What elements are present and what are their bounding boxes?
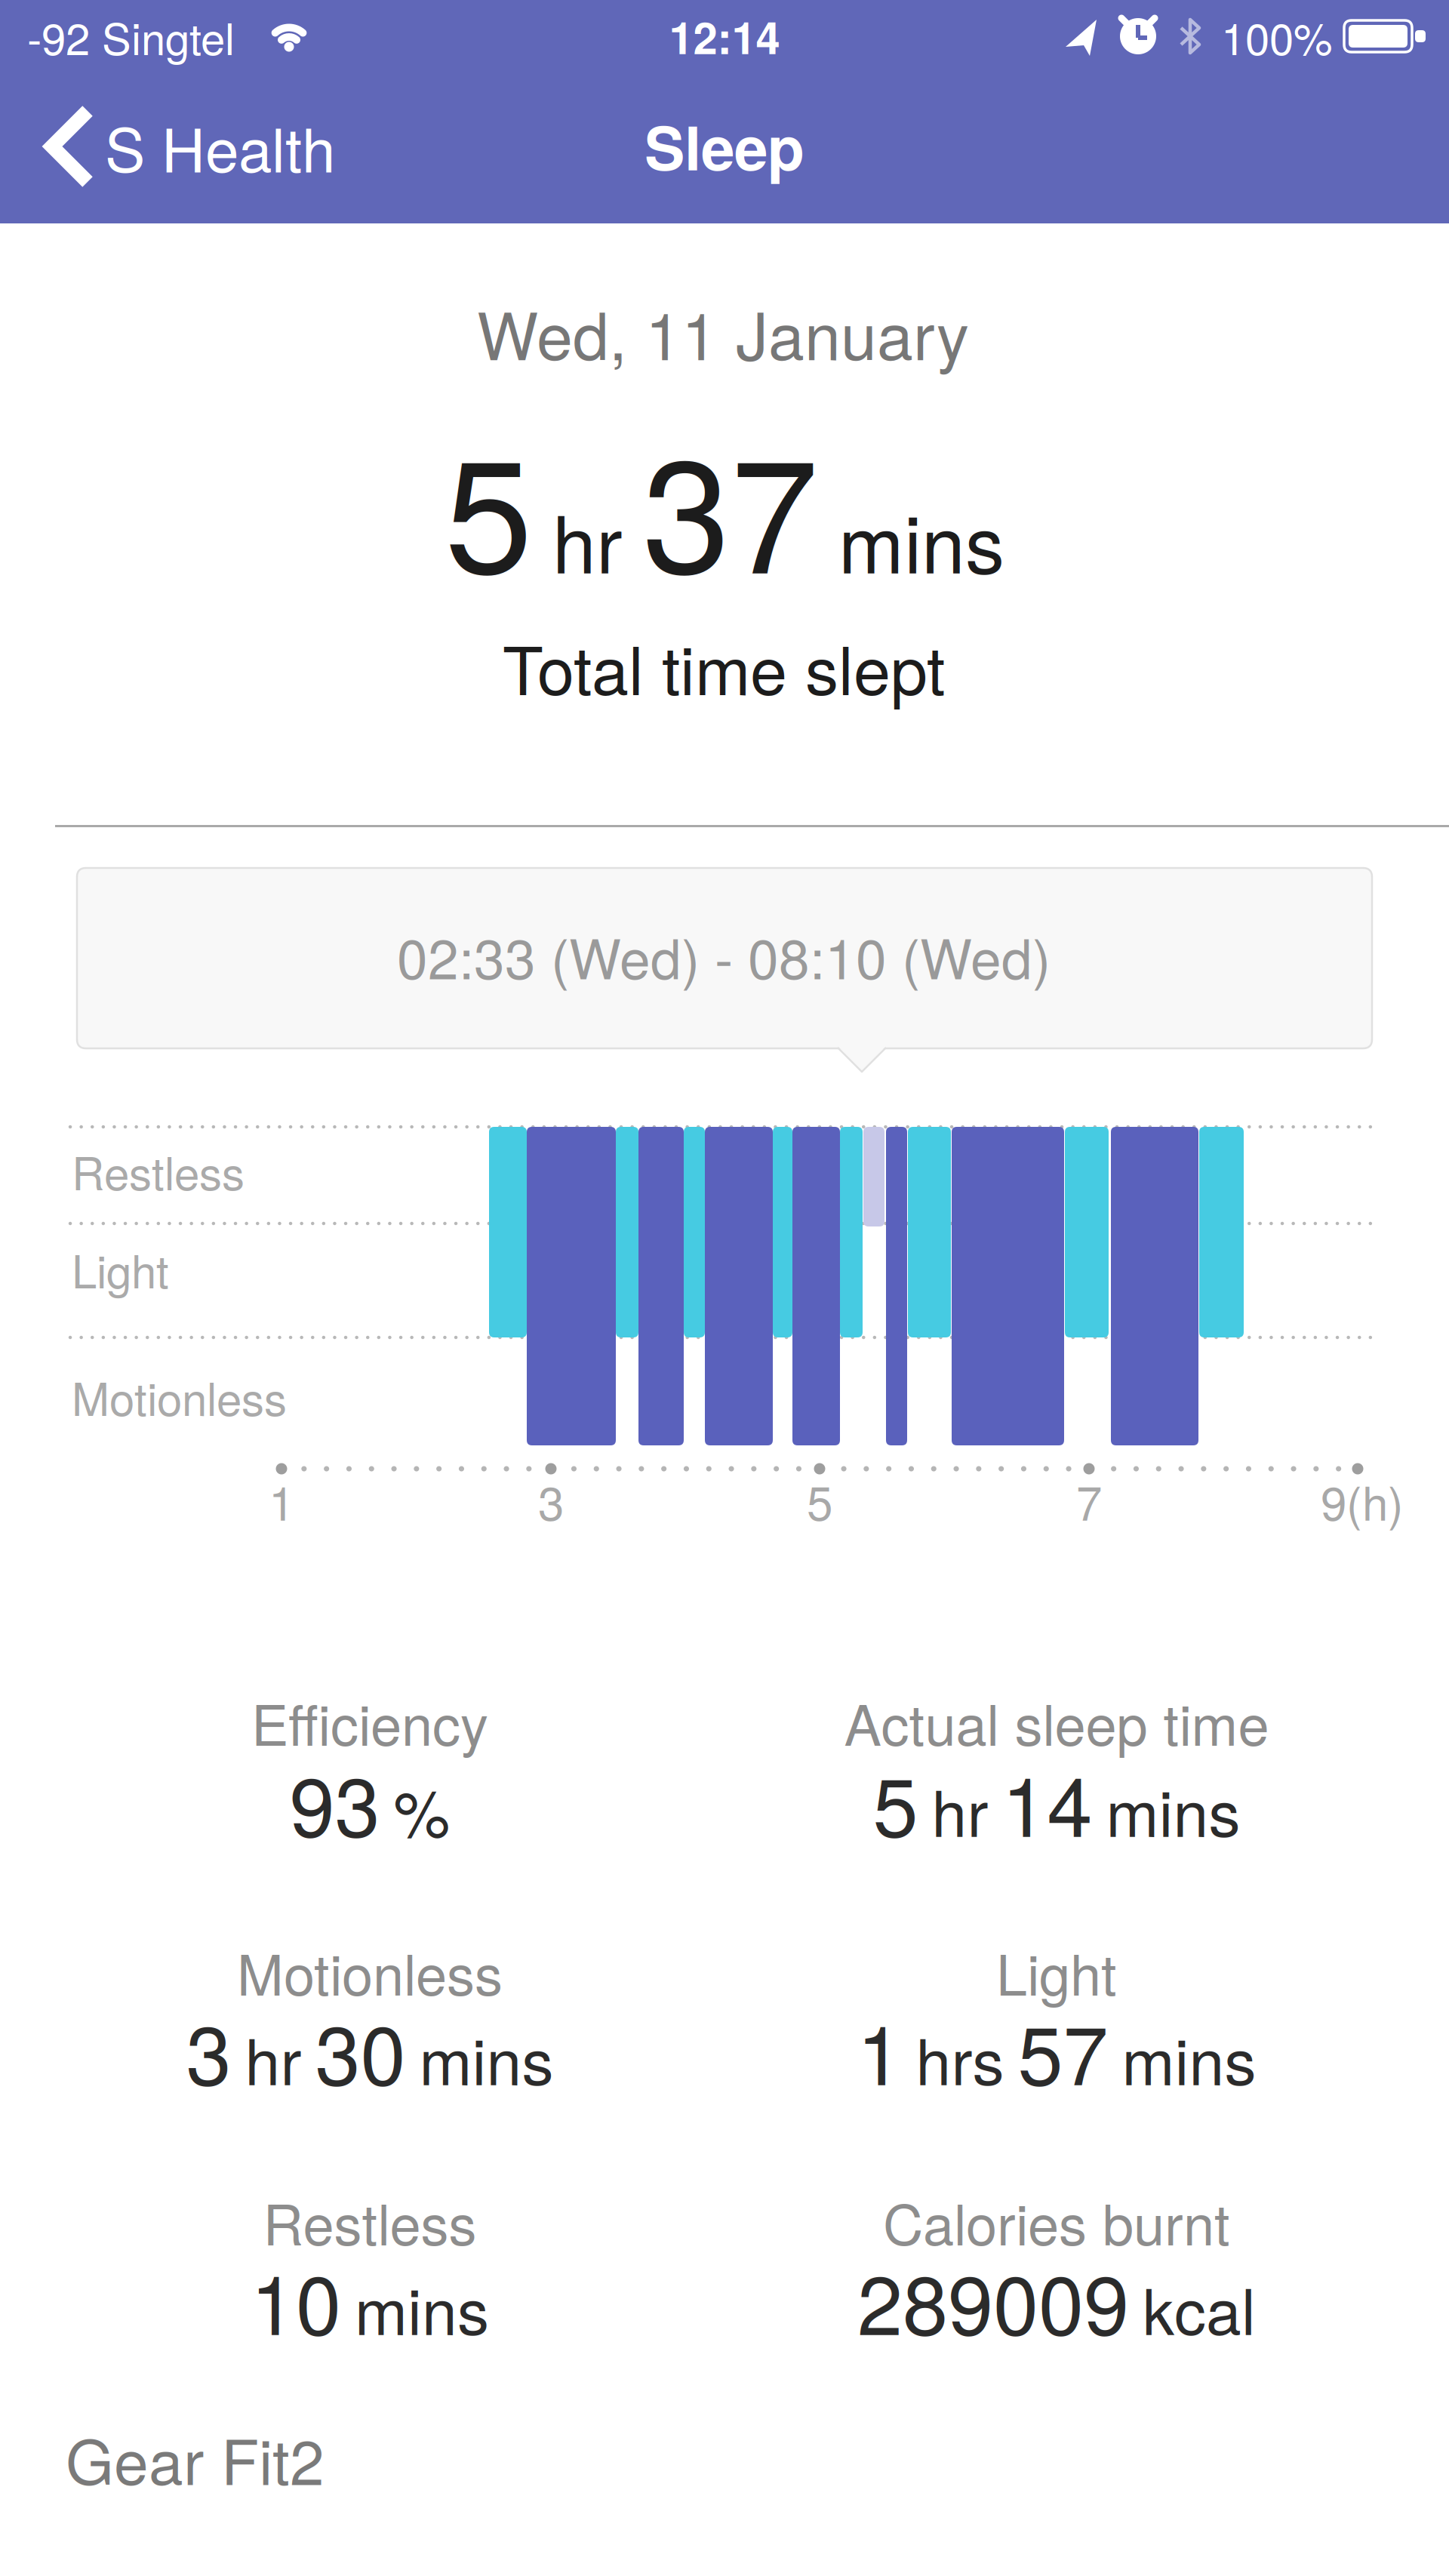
staticText: 9(h) bbox=[1321, 1467, 1404, 1534]
staticText: Motionless bbox=[72, 1364, 287, 1429]
staticText: Actual sleep time bbox=[844, 1682, 1269, 1762]
staticText: hr bbox=[932, 1764, 988, 1855]
staticText: mins bbox=[355, 2262, 489, 2353]
staticText: Calories burnt bbox=[883, 2181, 1230, 2261]
staticText: hrs bbox=[916, 2012, 1004, 2103]
staticText: 57 bbox=[1018, 1992, 1108, 2108]
staticText: 7 bbox=[1076, 1467, 1102, 1534]
staticText: % bbox=[394, 1764, 450, 1855]
staticText: 5 bbox=[445, 391, 533, 618]
staticText: 02:33 (Wed) - 08:10 (Wed) bbox=[397, 916, 1051, 995]
staticText: Restless bbox=[263, 2181, 477, 2261]
staticText: 289009 bbox=[857, 2241, 1129, 2358]
staticText: Sleep bbox=[645, 102, 804, 189]
staticText: Light bbox=[996, 1931, 1117, 2011]
staticText: Total time slept bbox=[503, 619, 945, 714]
staticText: 37 bbox=[642, 391, 819, 618]
button[interactable]: S Health bbox=[51, 101, 335, 192]
staticText: 10 bbox=[251, 2241, 341, 2358]
staticText: 5 bbox=[873, 1743, 918, 1860]
staticText: mins bbox=[1122, 2012, 1256, 2103]
staticText: Wed, 11 January bbox=[477, 286, 969, 379]
staticText: Light bbox=[72, 1236, 169, 1301]
staticText: 1 bbox=[857, 1992, 902, 2108]
staticText: 14 bbox=[1002, 1743, 1092, 1860]
staticText: S Health bbox=[105, 103, 335, 190]
staticText: 100% bbox=[1221, 5, 1333, 68]
staticText: hr bbox=[245, 2012, 301, 2103]
staticText: mins bbox=[419, 2012, 554, 2103]
staticText: Efficiency bbox=[251, 1682, 488, 1762]
staticText: mins bbox=[838, 483, 1004, 596]
staticText: 93 bbox=[289, 1743, 380, 1860]
staticText: 5 bbox=[807, 1467, 832, 1534]
staticText: Restless bbox=[72, 1138, 245, 1203]
staticText: mins bbox=[1106, 1764, 1240, 1855]
staticText: Motionless bbox=[237, 1931, 503, 2011]
staticText: 1 bbox=[269, 1467, 294, 1534]
staticText: 3 bbox=[538, 1467, 564, 1534]
staticText: 30 bbox=[315, 1992, 406, 2108]
staticText: kcal bbox=[1143, 2262, 1256, 2353]
staticText: -92 Singtel bbox=[27, 5, 235, 68]
staticText: 3 bbox=[186, 1992, 231, 2108]
staticText: Gear Fit2 bbox=[66, 2414, 325, 2503]
staticText: hr bbox=[552, 483, 623, 596]
staticText: 12:14 bbox=[669, 5, 780, 68]
